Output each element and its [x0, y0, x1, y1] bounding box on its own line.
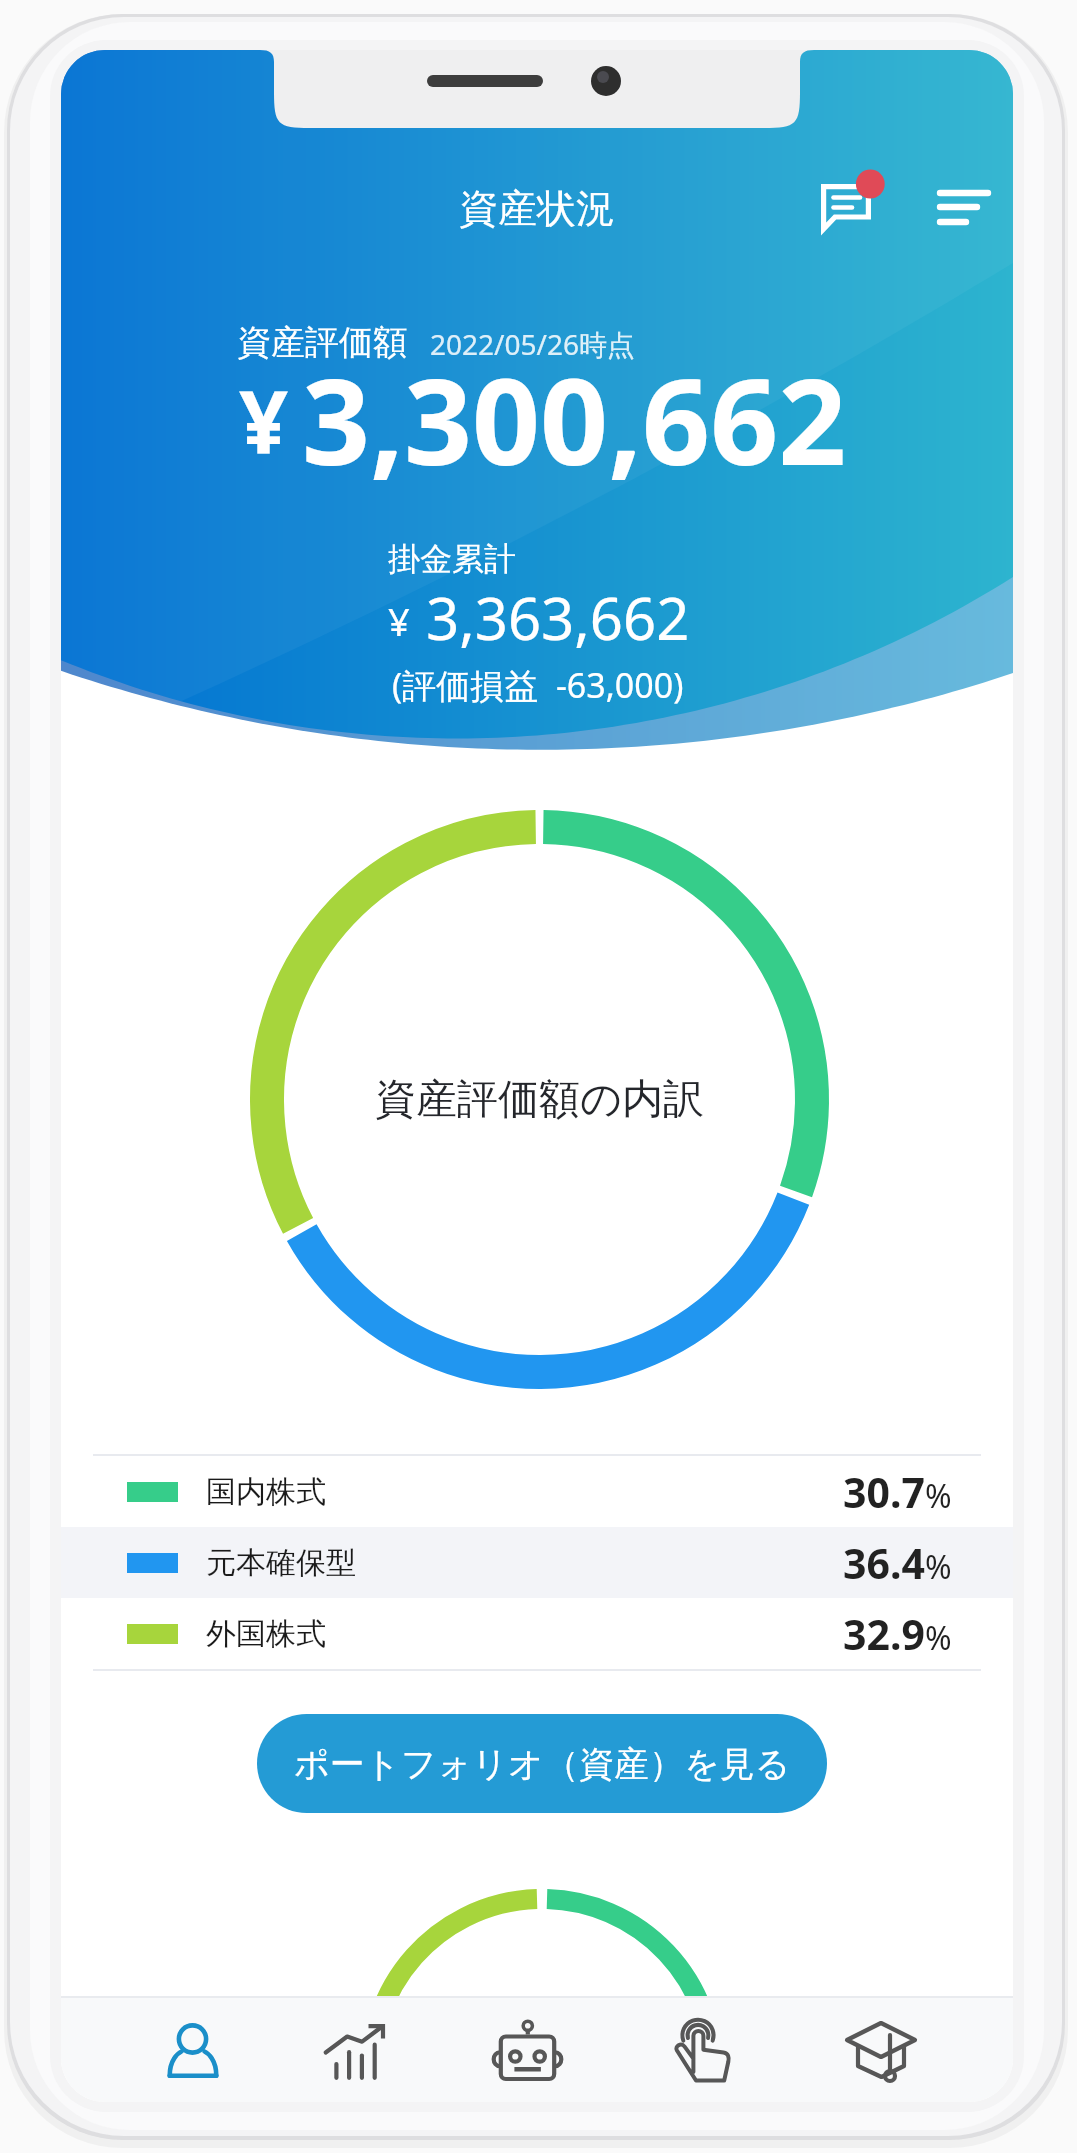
staticText: %	[925, 1616, 952, 1660]
staticText: ポートフォリオ（資産）を見る	[294, 1742, 791, 1786]
staticText: 3,363,662	[426, 578, 690, 657]
button[interactable]: Menu	[914, 158, 1013, 258]
staticText: 2022/05/26時点	[430, 325, 635, 363]
button[interactable]: ポートフォリオ（資産）を見る	[257, 1714, 827, 1813]
staticText: ¥	[388, 595, 410, 647]
staticText: 36.4	[843, 1535, 925, 1591]
staticText: %	[925, 1545, 952, 1589]
button[interactable]: Performance	[279, 1998, 451, 2102]
staticText: (評価損益 -63,000)	[392, 662, 684, 708]
button[interactable]: Learn	[795, 1998, 967, 2102]
staticText: 掛金累計	[388, 539, 516, 579]
staticText: 30.7	[843, 1464, 925, 1520]
button[interactable]: Account	[107, 1998, 279, 2102]
button[interactable]: Simulation	[623, 1998, 795, 2102]
staticText: 国内株式	[206, 1473, 326, 1511]
staticText: 資産評価額	[237, 321, 407, 364]
button[interactable]: Messages	[811, 158, 921, 258]
staticText: 32.9	[843, 1606, 925, 1662]
button[interactable]: Robo advisor	[451, 1998, 623, 2102]
staticText: 資産評価額の内訳	[375, 1074, 704, 1126]
staticText: 元本確保型	[206, 1544, 356, 1582]
button[interactable]: 国内株式	[61, 1456, 1013, 1527]
staticText: 3,300,662	[302, 338, 847, 500]
staticText: 資産状況	[459, 184, 615, 233]
staticText: ¥	[239, 361, 289, 478]
button[interactable]: 資産状況	[439, 172, 635, 245]
button[interactable]: 外国株式	[61, 1598, 1013, 1669]
staticText: 外国株式	[206, 1615, 326, 1653]
button[interactable]: 元本確保型	[61, 1527, 1013, 1598]
staticText: %	[925, 1474, 952, 1518]
